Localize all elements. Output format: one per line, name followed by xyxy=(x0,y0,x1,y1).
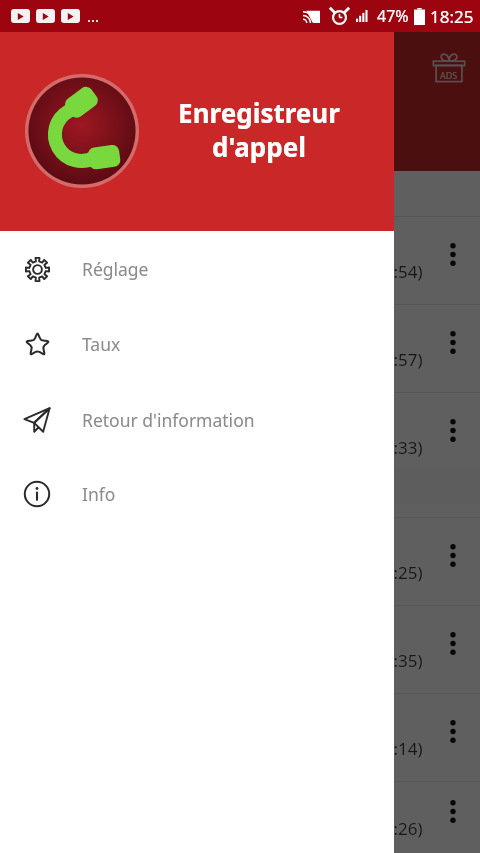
staticText: 18:25 xyxy=(430,5,474,28)
staticText: +212 6 12 34 56 78 . 29-Dec-2020 17:12:4… xyxy=(18,348,423,371)
button[interactable]: More options xyxy=(436,626,470,660)
staticText: Inconnu xyxy=(18,405,85,428)
staticText: +212 6 12 34 56 78 . 29-Dec-2020 17:20:1… xyxy=(18,260,423,283)
button[interactable]: Info xyxy=(0,457,394,531)
button[interactable]: Retour d'information xyxy=(0,382,394,457)
button[interactable]: ENREGISTREMENTS xyxy=(26,98,147,146)
button[interactable]: Ads xyxy=(423,42,475,94)
staticText: ... xyxy=(87,6,100,26)
staticText: +212 6 12 34 56 78 . 29-Dec-2020 16:21:3… xyxy=(18,817,423,840)
staticText: +212 6 12 34 56 78 . 29-Dec-2020 16:46:1… xyxy=(18,561,423,584)
staticText: +212 6 12 34 56 78 . 29-Dec-2020 16:58:0… xyxy=(18,436,423,459)
button[interactable]: More options xyxy=(436,794,470,828)
button[interactable] xyxy=(0,481,480,517)
button[interactable]: More options xyxy=(436,413,470,447)
staticText: Réglage xyxy=(82,257,149,281)
button[interactable]: Inconnu xyxy=(0,305,480,392)
button[interactable]: Inconnu xyxy=(0,393,480,480)
staticText: 47% xyxy=(377,5,409,27)
staticText: Retour d'information xyxy=(82,408,255,432)
button[interactable]: Inconnu xyxy=(0,217,480,304)
staticText: Inconnu xyxy=(18,229,85,252)
staticText: Info xyxy=(82,482,116,506)
staticText: Taux xyxy=(82,332,121,356)
button[interactable] xyxy=(0,171,480,216)
staticText: Enregistreur d'appel xyxy=(178,95,340,165)
staticText: Inconnu xyxy=(18,317,85,340)
staticText: +212 6 12 34 56 78 . 29-Dec-2020 16:30:5… xyxy=(18,737,423,760)
button[interactable]: Réglage xyxy=(0,231,394,306)
button[interactable]: Inconnu xyxy=(0,782,480,853)
button[interactable]: Taux xyxy=(0,306,394,382)
button[interactable]: More options xyxy=(436,237,470,271)
button[interactable]: Inconnu xyxy=(0,518,480,605)
staticText: +212 6 12 34 56 78 . 29-Dec-2020 16:40:0… xyxy=(18,649,423,672)
button[interactable]: Inconnu xyxy=(0,606,480,693)
button[interactable]: More options xyxy=(436,325,470,359)
button[interactable]: More options xyxy=(436,538,470,572)
button[interactable]: More options xyxy=(436,714,470,748)
staticText: ADS xyxy=(440,69,458,81)
staticText: ENREGISTREMENTS xyxy=(26,113,147,131)
button[interactable]: Inconnu xyxy=(0,694,480,781)
